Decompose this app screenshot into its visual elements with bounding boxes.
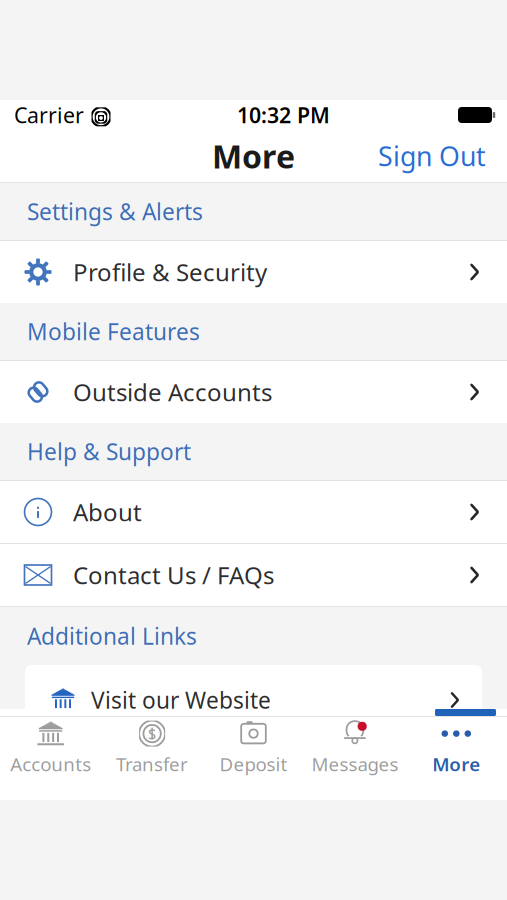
button[interactable]: Visit our Website <box>25 665 482 735</box>
staticText: Outside Accounts <box>73 376 272 408</box>
button[interactable]: Accounts <box>0 717 101 779</box>
staticText: Additional Links <box>27 621 197 651</box>
button[interactable]: Profile & Security <box>0 241 507 303</box>
staticText: Profile & Security <box>73 256 267 288</box>
button[interactable]: About <box>0 481 507 543</box>
button[interactable]: Deposit <box>203 717 304 779</box>
button[interactable]: S <box>101 717 203 779</box>
staticText: More <box>212 135 295 177</box>
staticText: Transfer <box>116 752 188 776</box>
button[interactable]: Locations <box>25 736 482 806</box>
staticText: 10:32 PM <box>237 101 330 129</box>
staticText: About <box>73 496 142 528</box>
staticText: Sign Out <box>378 138 486 174</box>
staticText: Visit our Website <box>91 685 271 715</box>
staticText: S <box>148 724 156 743</box>
button[interactable]: More <box>406 717 507 779</box>
staticText: More <box>432 752 480 776</box>
button[interactable]: Contact Us / FAQs <box>0 544 507 606</box>
staticText: Settings & Alerts <box>27 196 203 226</box>
button[interactable]: Outside Accounts <box>0 361 507 423</box>
button[interactable]: Messages <box>304 717 406 779</box>
button[interactable]: Sign Out <box>368 130 496 182</box>
staticText: Deposit <box>219 752 287 776</box>
staticText: Accounts <box>10 752 91 776</box>
staticText: Messages <box>311 752 398 776</box>
staticText: Mobile Features <box>27 316 200 346</box>
staticText: Contact Us / FAQs <box>73 559 274 591</box>
staticText: Help & Support <box>27 436 191 466</box>
staticText: Locations <box>91 756 194 786</box>
staticText: Carrier <box>14 101 84 129</box>
